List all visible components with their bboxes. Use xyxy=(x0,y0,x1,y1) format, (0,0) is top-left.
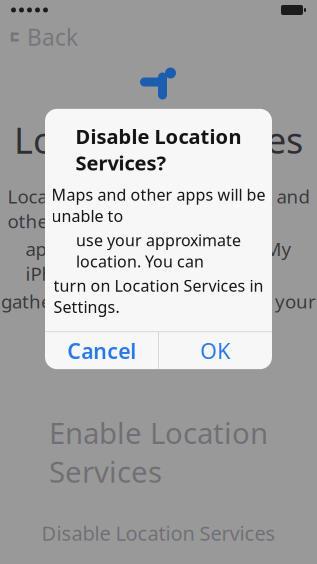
staticText: Maps and other apps will be unable to xyxy=(51,184,265,226)
staticText: Location Services allows Maps and other xyxy=(7,184,309,233)
staticText: gather and use data indicating your xyxy=(1,289,316,314)
button[interactable]: Cancel xyxy=(45,332,158,369)
staticText: Disable Location Services? xyxy=(75,123,241,176)
staticText: Disable Location Services xyxy=(41,520,275,546)
staticText: Enable Location Services xyxy=(49,413,268,491)
staticText: use your approximate location. You can xyxy=(76,229,241,272)
staticText: approximate location. xyxy=(63,317,253,342)
staticText: Back xyxy=(27,22,78,52)
button[interactable]: Back xyxy=(0,20,86,54)
staticText: Location Services xyxy=(14,116,303,164)
button[interactable]: Enable Location Services xyxy=(0,430,317,474)
staticText: turn on Location Services in Settings. xyxy=(53,275,263,317)
button[interactable]: Disable Location Services xyxy=(0,518,317,548)
button[interactable]: OK xyxy=(159,332,272,369)
staticText: Cancel xyxy=(67,336,136,365)
staticText: OK xyxy=(200,336,230,365)
staticText: apps and services like Find My iPhone to xyxy=(25,236,291,286)
